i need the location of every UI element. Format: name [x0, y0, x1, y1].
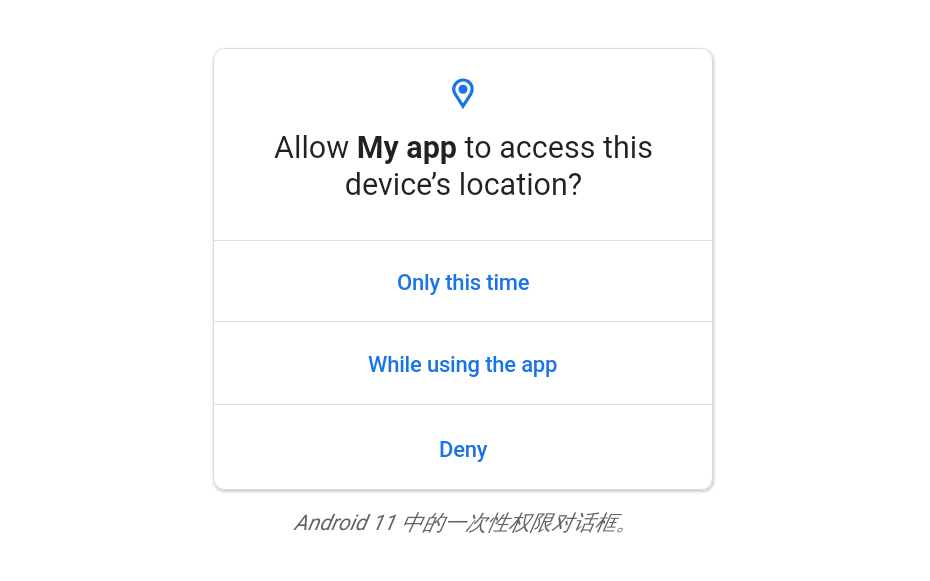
button[interactable]: While using the app — [213, 322, 713, 404]
staticText: Deny — [439, 437, 488, 463]
staticText: While using the app — [368, 352, 558, 378]
staticText: Allow My app to access this device’s loc… — [274, 130, 653, 202]
button[interactable]: Deny — [213, 405, 713, 490]
staticText: Only this time — [397, 270, 530, 296]
button[interactable]: Only this time — [213, 241, 713, 321]
staticText: Android 11 中的一次性权限对话框。 — [294, 509, 637, 536]
